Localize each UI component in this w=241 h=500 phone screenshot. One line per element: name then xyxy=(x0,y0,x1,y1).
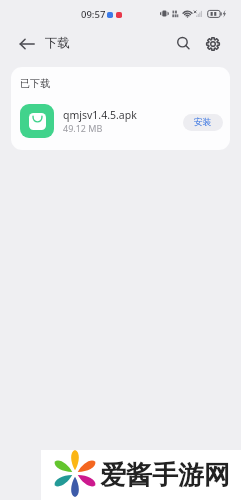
staticText: 已下载 xyxy=(20,77,50,90)
button[interactable]: qmjsv1.4.5.apk xyxy=(11,100,230,142)
staticText: 安装 xyxy=(194,117,212,128)
staticText: 爱酱手游网 xyxy=(100,459,230,492)
button[interactable]: Settings xyxy=(196,27,229,60)
staticText: 下载 xyxy=(45,35,70,51)
staticText: 49.12 MB xyxy=(63,122,103,134)
staticText: 09:57 xyxy=(81,8,106,21)
button[interactable]: Search xyxy=(167,27,200,60)
staticText: qmjsv1.4.5.apk xyxy=(63,108,137,122)
button[interactable]: 安装 xyxy=(183,114,223,131)
button[interactable]: Back xyxy=(10,27,43,60)
